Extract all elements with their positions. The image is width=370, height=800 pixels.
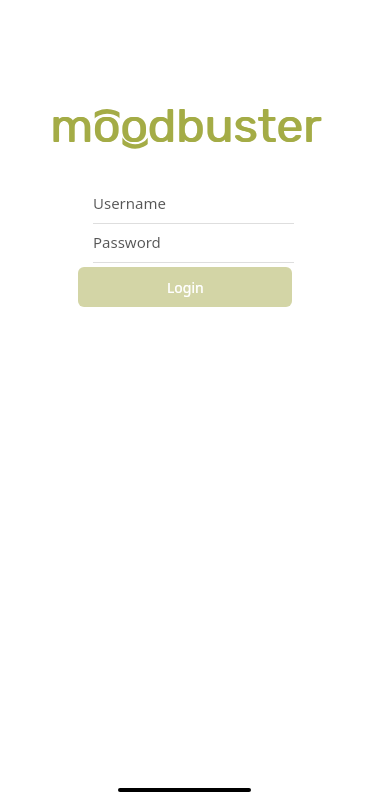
button[interactable]: Login — [78, 267, 292, 307]
staticText: Username — [93, 193, 166, 213]
staticText: Password — [93, 232, 161, 252]
staticText: moodbuster — [51, 97, 322, 154]
staticText: Login — [167, 278, 204, 297]
staticText: moodbuster — [50, 97, 321, 154]
